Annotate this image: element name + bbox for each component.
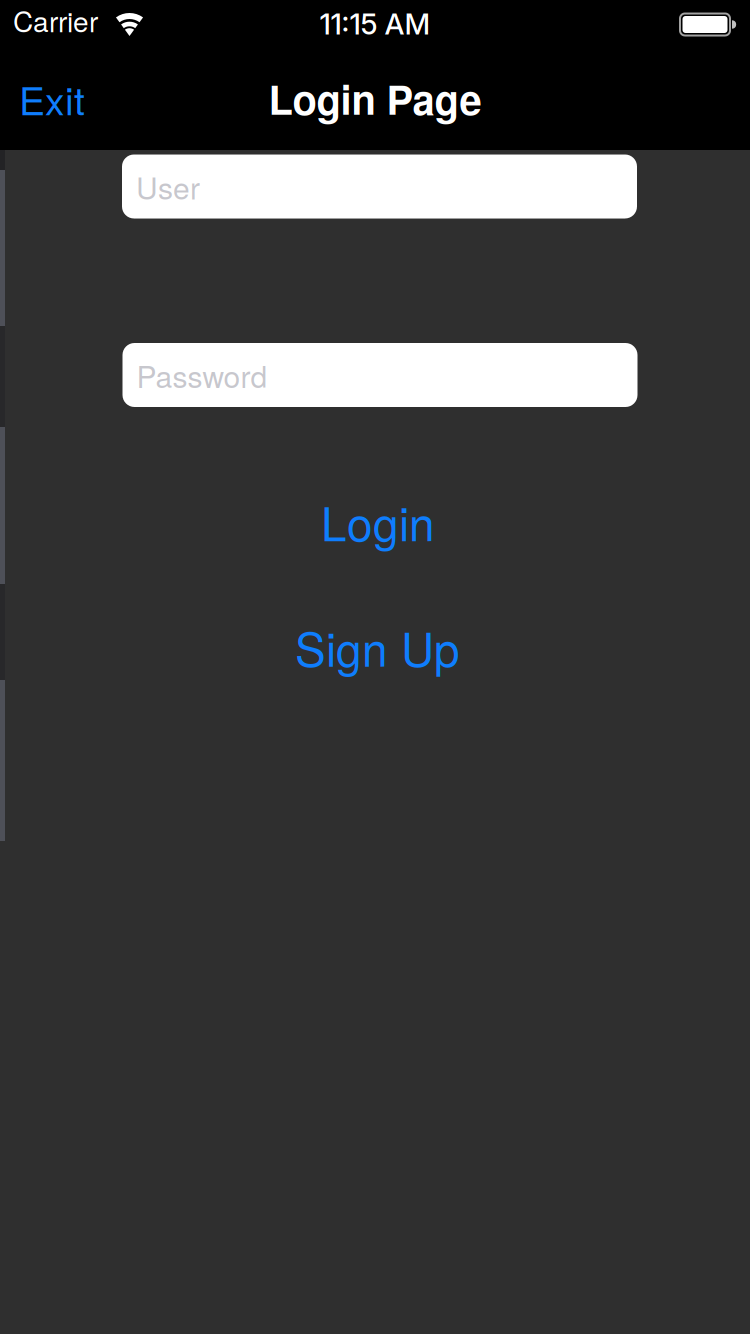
staticText: Password (136, 353, 267, 396)
button[interactable]: Sign Up (295, 614, 460, 680)
button[interactable]: Password (122, 343, 637, 407)
staticText: 11:15 AM (319, 7, 430, 41)
button[interactable]: User (122, 154, 637, 218)
staticText: Login (321, 489, 435, 554)
staticText: Exit (19, 71, 85, 126)
staticText: Carrier (13, 0, 98, 40)
staticText: Sign Up (295, 614, 460, 680)
button[interactable]: Login (321, 489, 435, 554)
staticText: Login Page (268, 70, 481, 127)
button[interactable]: Exit (19, 71, 85, 126)
staticText: User (136, 165, 200, 208)
